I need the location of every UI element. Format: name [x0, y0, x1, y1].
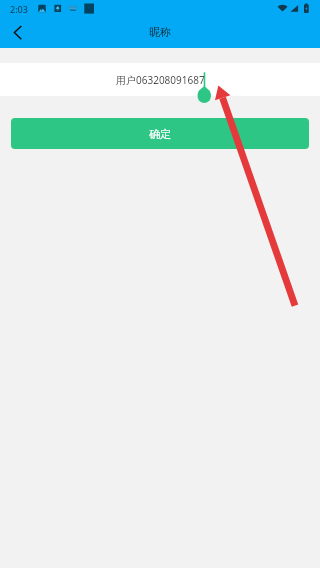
staticText: 用户063208091687 [116, 73, 205, 87]
button[interactable]: 确定 [11, 118, 309, 149]
staticText: 2:03 [10, 3, 28, 15]
button[interactable]: Back [0, 18, 34, 48]
button[interactable]: 用户063208091687 [0, 63, 320, 96]
staticText: 确定 [149, 127, 171, 141]
staticText: 昵称 [149, 25, 171, 39]
